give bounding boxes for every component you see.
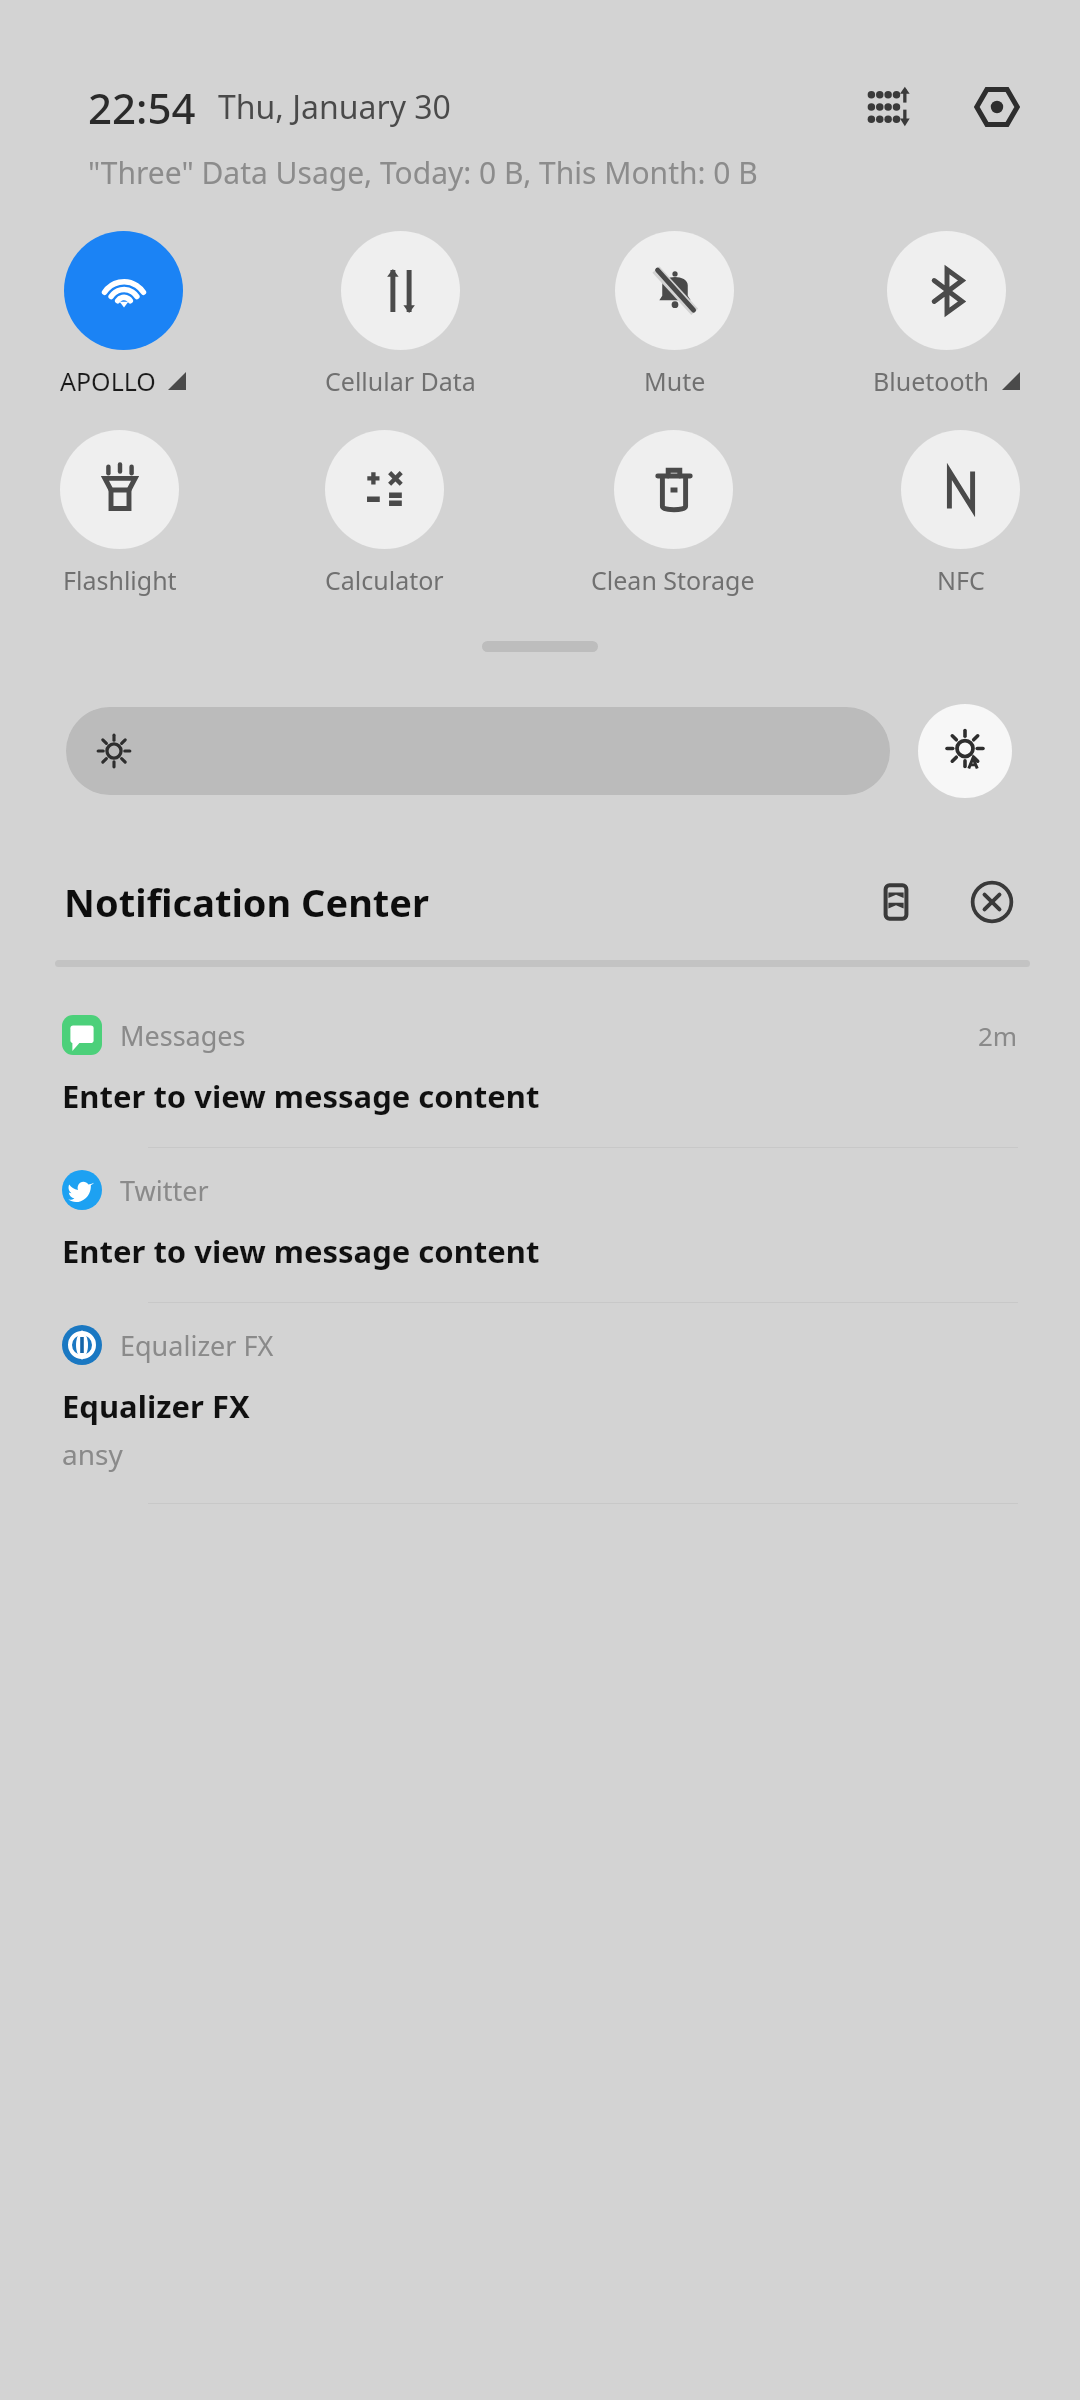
staticText: Twitter bbox=[120, 1172, 209, 1209]
staticText: Thu, January 30 bbox=[218, 85, 451, 129]
staticText: Equalizer FX bbox=[62, 1385, 250, 1427]
button[interactable]: Settings bbox=[968, 78, 1026, 136]
staticText: NFC bbox=[937, 563, 985, 597]
staticText: 2m bbox=[978, 1018, 1018, 1053]
staticText: Equalizer FX bbox=[120, 1327, 274, 1364]
staticText: Notification Center bbox=[64, 876, 430, 928]
button[interactable]: Flashlight bbox=[60, 430, 179, 597]
button[interactable]: Notification settings bbox=[868, 874, 924, 930]
button[interactable]: Clear all notifications bbox=[964, 874, 1020, 930]
staticText: ansy bbox=[62, 1435, 123, 1473]
button[interactable]: Equalizer FX bbox=[0, 1303, 1080, 1504]
button[interactable]: Clean Storage bbox=[591, 430, 755, 597]
button[interactable]: Messages bbox=[0, 993, 1080, 1148]
staticText: Clean Storage bbox=[591, 563, 755, 597]
staticText: Enter to view message content bbox=[62, 1075, 540, 1117]
button[interactable]: Calculator bbox=[325, 430, 444, 597]
staticText: Messages bbox=[120, 1017, 246, 1054]
button[interactable]: Data usage bbox=[860, 78, 918, 136]
staticText: Calculator bbox=[325, 563, 444, 597]
button[interactable]: Mute bbox=[615, 231, 734, 398]
button[interactable]: NFC bbox=[901, 430, 1020, 597]
button[interactable]: Brightness bbox=[66, 707, 890, 795]
button[interactable]: Twitter bbox=[0, 1148, 1080, 1303]
staticText: APOLLO bbox=[60, 364, 156, 398]
staticText: 22:54 bbox=[88, 79, 196, 136]
staticText: Mute bbox=[644, 364, 706, 398]
staticText: Flashlight bbox=[63, 563, 177, 597]
staticText: Cellular Data bbox=[325, 364, 476, 398]
staticText: "Three" Data Usage, Today: 0 B, This Mon… bbox=[88, 152, 758, 193]
staticText: Enter to view message content bbox=[62, 1230, 540, 1272]
staticText: Bluetooth bbox=[873, 364, 990, 398]
button[interactable]: Bluetooth bbox=[873, 231, 1020, 398]
button[interactable]: APOLLO bbox=[60, 231, 186, 398]
button[interactable]: Auto brightness bbox=[918, 704, 1012, 798]
button[interactable]: Cellular Data bbox=[325, 231, 476, 398]
